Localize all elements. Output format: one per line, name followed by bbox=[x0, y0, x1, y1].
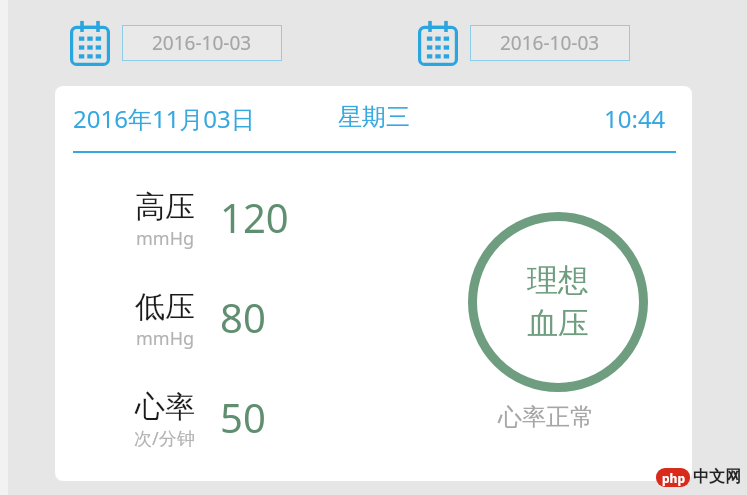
staticText: 心率正常 bbox=[498, 402, 594, 432]
staticText: 中文网 bbox=[693, 467, 741, 487]
staticText: mmHg bbox=[136, 326, 195, 351]
staticText: 80 bbox=[220, 290, 266, 344]
staticText: 血压 bbox=[527, 304, 589, 343]
staticText: 心率 bbox=[135, 388, 195, 426]
staticText: 星期三 bbox=[338, 102, 410, 132]
button[interactable]: 低压 bbox=[75, 288, 335, 372]
button[interactable]: 心率 bbox=[75, 388, 335, 472]
other: Pick date bbox=[70, 20, 110, 66]
staticText: 次/分钟 bbox=[134, 426, 195, 451]
staticText: mmHg bbox=[136, 226, 195, 251]
other: Pick date bbox=[418, 20, 458, 66]
staticText: 2016-10-03 bbox=[152, 30, 252, 56]
staticText: 理想 bbox=[527, 261, 589, 300]
staticText: 2016年11月03日 bbox=[73, 102, 255, 135]
staticText: 高压 bbox=[135, 188, 195, 226]
button[interactable]: 高压 bbox=[75, 188, 335, 272]
staticText: php bbox=[662, 470, 685, 486]
staticText: 2016-10-03 bbox=[500, 30, 600, 56]
staticText: 120 bbox=[220, 190, 289, 244]
button[interactable]: Pick date bbox=[418, 18, 630, 68]
staticText: 50 bbox=[220, 390, 266, 444]
staticText: 10:44 bbox=[604, 102, 666, 135]
button[interactable]: Pick date bbox=[70, 18, 282, 68]
staticText: 低压 bbox=[135, 288, 195, 326]
